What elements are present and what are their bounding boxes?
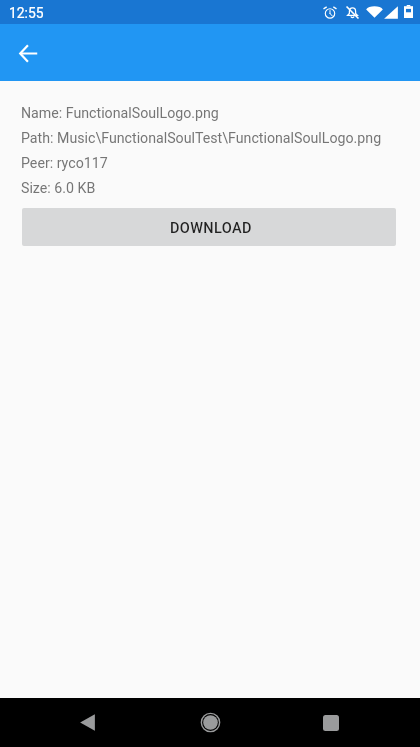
button[interactable]: Home	[185, 698, 235, 747]
staticText: 12:55	[9, 5, 44, 21]
staticText: Path: Music\FunctionalSoulTest\Functiona…	[21, 130, 382, 147]
button[interactable]: Back	[6, 31, 50, 75]
staticText: Name: FunctionalSoulLogo.png	[21, 105, 219, 122]
staticText: Size: 6.0 KB	[21, 180, 96, 197]
button[interactable]: DOWNLOAD	[22, 208, 396, 246]
staticText: DOWNLOAD	[170, 220, 252, 237]
button[interactable]: Recent apps	[306, 698, 356, 747]
button[interactable]: Back	[62, 698, 112, 747]
staticText: Peer: ryco117	[21, 155, 108, 172]
